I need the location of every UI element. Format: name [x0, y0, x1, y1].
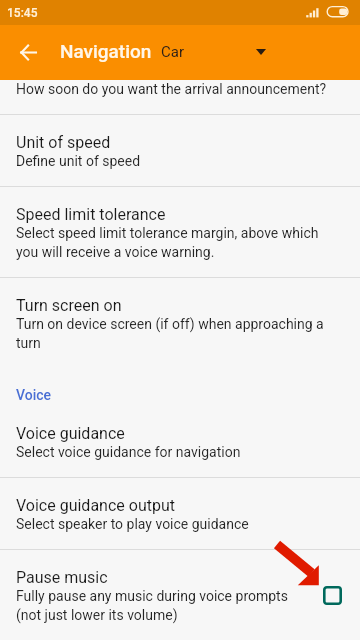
staticText: Unit of speed — [16, 133, 111, 152]
staticText: How soon do you want the arrival announc… — [16, 81, 327, 97]
staticText: Select speed limit tolerance margin, abo… — [16, 225, 336, 260]
button[interactable]: Unit of speed — [0, 115, 360, 187]
staticText: Select speaker to play voice guidance — [16, 516, 249, 532]
staticText: Turn on device screen (if off) when appr… — [16, 316, 336, 351]
button[interactable]: Pause music — [0, 550, 360, 640]
button[interactable]: Turn screen on — [0, 278, 360, 368]
button[interactable]: How soon do you want the arrival announc… — [0, 80, 360, 115]
button[interactable]: Navigate up — [4, 28, 52, 76]
staticText: Navigation — [60, 40, 152, 62]
button[interactable]: Voice guidance output — [0, 478, 360, 550]
button[interactable]: Change profile — [246, 37, 276, 67]
staticText: Voice — [16, 387, 52, 403]
staticText: 15:45 — [7, 6, 38, 20]
staticText: Voice guidance — [16, 424, 125, 443]
staticText: Select voice guidance for navigation — [16, 444, 241, 460]
staticText: Define unit of speed — [16, 153, 141, 169]
button[interactable]: Pause music checkbox — [323, 586, 342, 605]
staticText: Car — [161, 43, 185, 61]
button[interactable]: Speed limit tolerance — [0, 187, 360, 278]
staticText: Turn screen on — [16, 296, 122, 315]
staticText: Fully pause any music during voice promp… — [16, 588, 303, 623]
button[interactable]: Voice guidance — [0, 406, 360, 478]
staticText: Pause music — [16, 568, 108, 587]
staticText: Speed limit tolerance — [16, 205, 166, 224]
staticText: Voice guidance output — [16, 496, 175, 515]
